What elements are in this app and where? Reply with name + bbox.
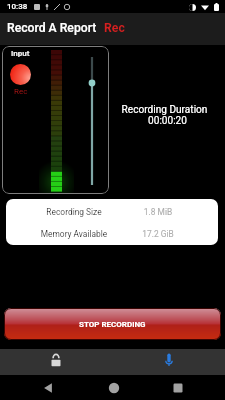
button[interactable]: Microphone: [112, 349, 225, 375]
staticText: 17.2 GiB: [125, 229, 191, 239]
staticText: STOP RECORDING: [79, 320, 146, 329]
staticText: 00:00:20: [109, 115, 225, 127]
button[interactable]: STOP RECORDING: [4, 308, 221, 340]
button[interactable]: Back: [31, 375, 64, 400]
button[interactable]: Recents: [161, 375, 194, 400]
staticText: 1.8 MiB: [125, 207, 191, 217]
staticText: Record A Report: [7, 21, 97, 35]
staticText: 10:38: [7, 2, 28, 11]
button[interactable]: Home: [97, 375, 130, 400]
staticText: Input: [11, 49, 30, 58]
staticText: Memory Available: [6, 229, 142, 239]
staticText: Rec: [14, 87, 28, 96]
button[interactable]: Lock: [0, 349, 112, 375]
button[interactable]: Record: [10, 64, 31, 85]
staticText: Recording Size: [6, 207, 142, 217]
staticText: Recording Duration: [106, 104, 223, 116]
staticText: Rec: [104, 21, 125, 35]
